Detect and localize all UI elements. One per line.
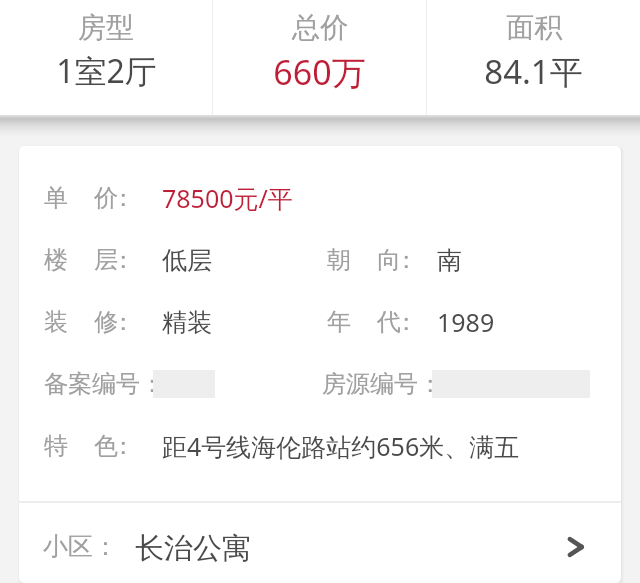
staticText: 价 bbox=[94, 183, 118, 213]
staticText: 层 bbox=[94, 245, 118, 275]
staticText: 南 bbox=[437, 245, 462, 276]
staticText: 备案编号： bbox=[44, 369, 153, 399]
staticText: 精装 bbox=[162, 307, 212, 338]
staticText: 78500元/平 bbox=[162, 181, 293, 215]
staticText: 装 bbox=[44, 307, 68, 337]
staticText: ： bbox=[111, 431, 135, 461]
staticText: 房源编号： bbox=[322, 369, 432, 399]
button[interactable]: 特 bbox=[19, 415, 621, 477]
staticText: 年 bbox=[327, 307, 351, 337]
button[interactable]: 楼 bbox=[19, 229, 621, 291]
button[interactable]: 面积 bbox=[427, 0, 640, 115]
staticText: ： bbox=[394, 245, 418, 275]
staticText: ： bbox=[394, 307, 418, 337]
staticText: 84.1平 bbox=[484, 49, 583, 94]
staticText: 低层 bbox=[162, 245, 212, 276]
other: 查看小区详情 bbox=[560, 531, 592, 563]
staticText: ： bbox=[111, 183, 135, 213]
staticText: 特 bbox=[44, 431, 68, 461]
button[interactable]: 装 bbox=[19, 291, 621, 353]
staticText: 总价 bbox=[292, 10, 348, 45]
button[interactable]: 房型 bbox=[0, 0, 212, 115]
staticText: 房型 bbox=[78, 10, 134, 45]
staticText: 向 bbox=[377, 245, 401, 275]
staticText: 长治公寓 bbox=[135, 530, 251, 563]
staticText: 小区： bbox=[43, 531, 118, 562]
staticText: 修 bbox=[94, 307, 118, 337]
staticText: 代 bbox=[377, 307, 401, 337]
staticText: 单 bbox=[44, 183, 68, 213]
button[interactable]: 小区： bbox=[19, 503, 621, 583]
staticText: 楼 bbox=[44, 245, 68, 275]
staticText: 1989 bbox=[437, 305, 495, 339]
staticText: 660万 bbox=[273, 49, 366, 95]
staticText: 1室2厅 bbox=[56, 49, 157, 93]
button[interactable]: 单 bbox=[19, 167, 621, 229]
staticText: 朝 bbox=[327, 245, 351, 275]
staticText: 色 bbox=[94, 431, 118, 461]
button[interactable]: 备案编号： bbox=[19, 353, 621, 415]
staticText: 距4号线海伦路站约656米、满五 bbox=[162, 429, 520, 463]
button[interactable]: 总价 bbox=[213, 0, 426, 115]
staticText: ： bbox=[111, 245, 135, 275]
staticText: ： bbox=[111, 307, 135, 337]
staticText: 面积 bbox=[506, 10, 562, 45]
